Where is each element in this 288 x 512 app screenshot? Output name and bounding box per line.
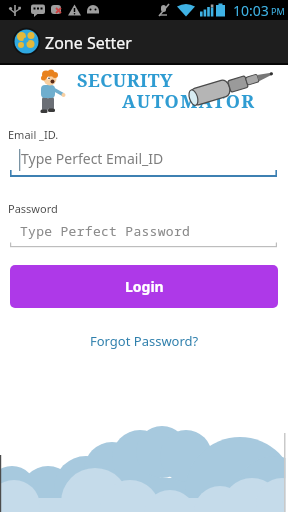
staticText: Type Perfect Password xyxy=(20,222,191,240)
staticText: PM xyxy=(271,5,285,17)
button[interactable]: Login xyxy=(10,265,278,308)
button[interactable]: Type Perfect Email_ID xyxy=(8,142,280,178)
button[interactable]: Type Perfect Password xyxy=(8,216,280,250)
staticText: Login xyxy=(125,277,164,296)
button[interactable]: Forgot Password? xyxy=(90,332,199,350)
staticText: Email _ID. xyxy=(8,127,59,142)
staticText: Password xyxy=(8,201,58,216)
staticText: 10:03 xyxy=(233,1,269,20)
staticText: SECURITY xyxy=(77,68,173,93)
staticText: Type Perfect Email_ID xyxy=(21,149,164,168)
staticText: AUTOMATOR xyxy=(122,89,256,114)
staticText: Zone Setter xyxy=(45,32,132,54)
